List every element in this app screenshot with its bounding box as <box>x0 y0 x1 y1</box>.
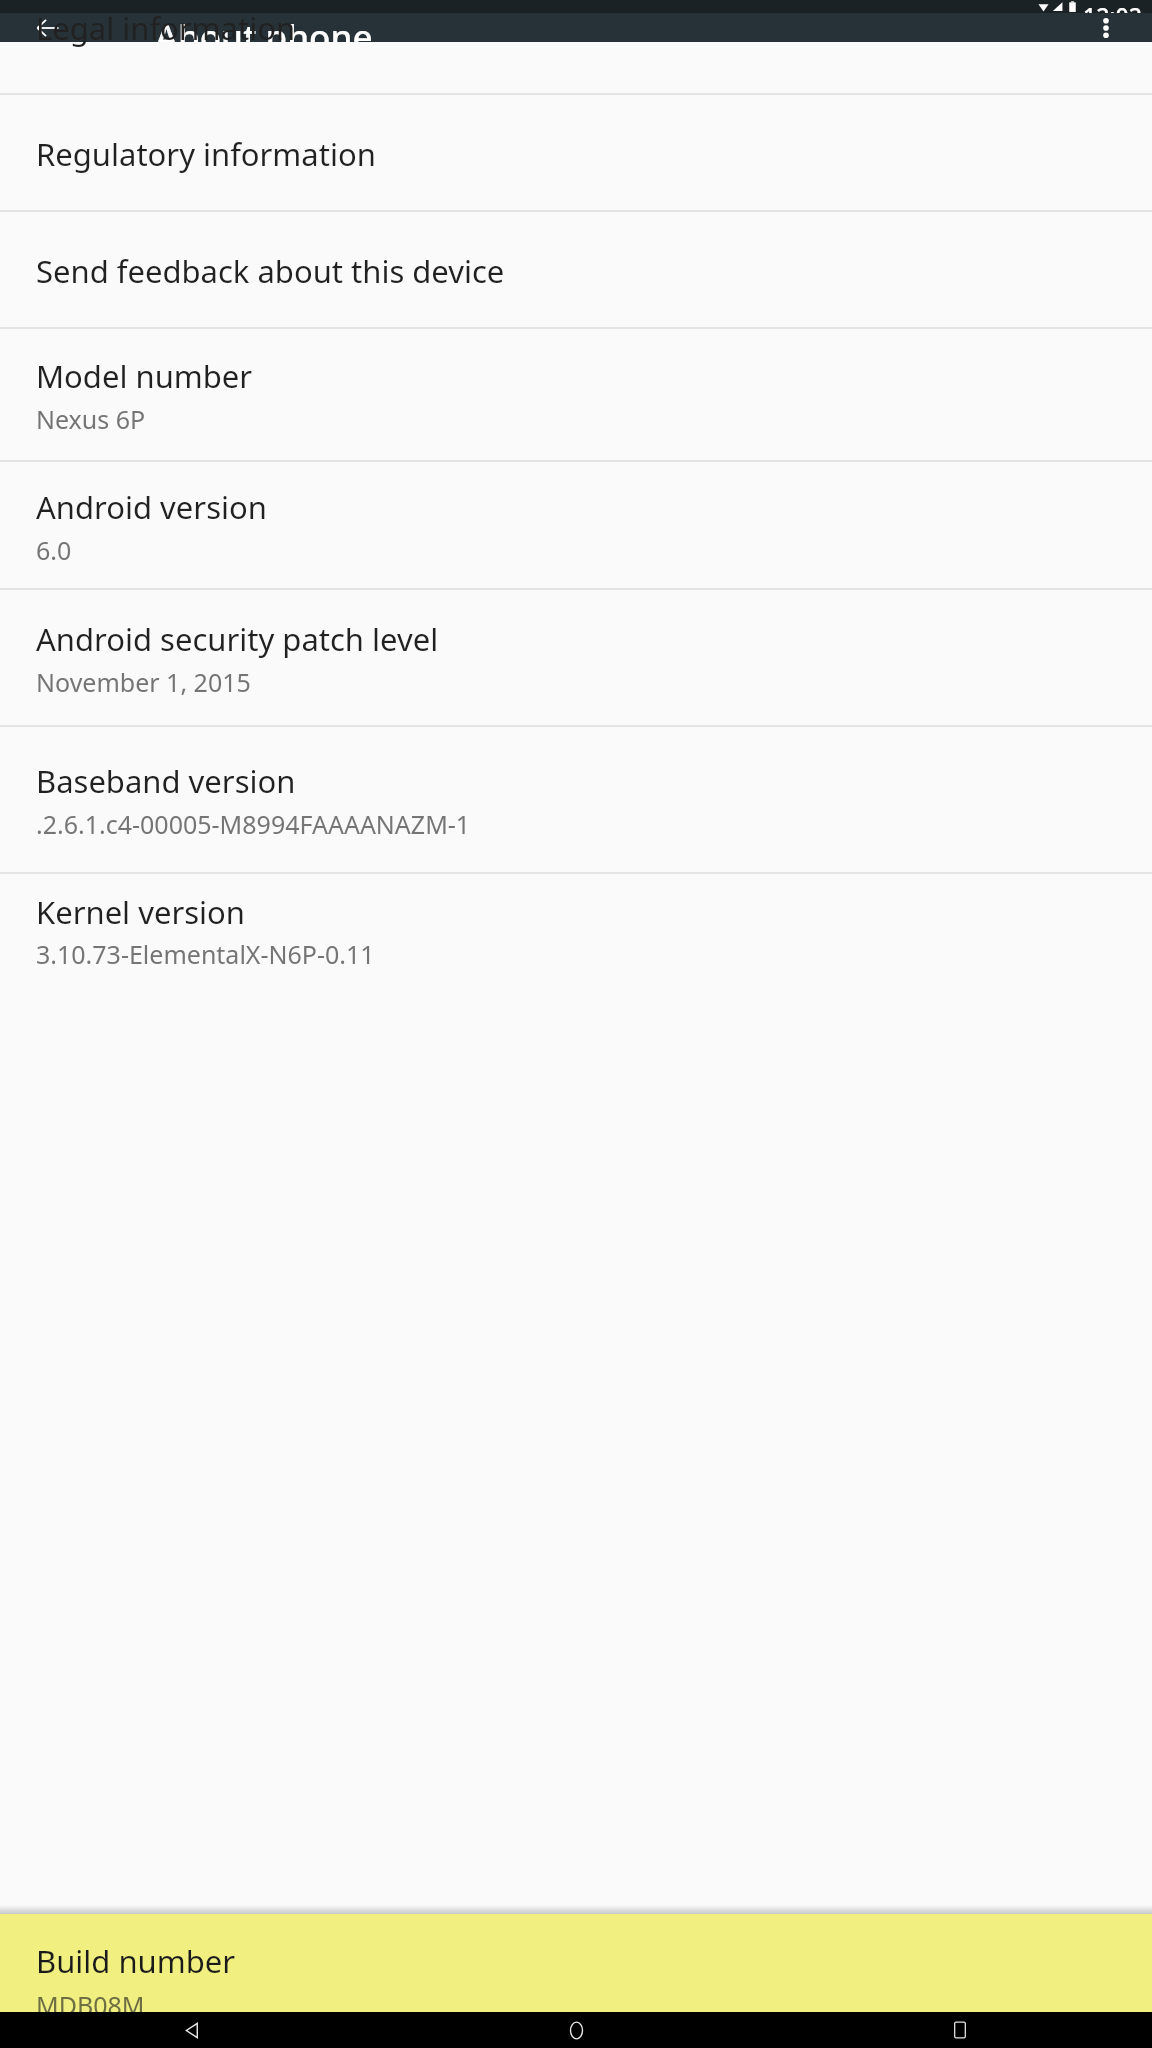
button[interactable]: Android version <box>0 462 1152 590</box>
button[interactable]: Kernel version <box>0 874 1152 977</box>
button[interactable]: Back <box>168 2012 216 2048</box>
staticText: Android security patch level <box>36 618 439 660</box>
staticText: 12:02 <box>1083 0 1142 13</box>
button[interactable]: Back <box>24 13 72 42</box>
staticText: Android version <box>36 486 267 528</box>
staticText: Kernel version <box>36 891 245 933</box>
staticText: Build number <box>36 1940 236 1982</box>
button[interactable]: Regulatory information <box>0 95 1152 212</box>
button[interactable]: Home <box>552 2012 600 2048</box>
staticText: November 1, 2015 <box>36 665 251 699</box>
button[interactable]: Baseband version <box>0 727 1152 874</box>
button[interactable]: Send feedback about this device <box>0 212 1152 329</box>
staticText: Send feedback about this device <box>36 250 505 292</box>
button[interactable]: Recents <box>936 2012 984 2048</box>
staticText: Regulatory information <box>36 133 376 175</box>
staticText: 6.0 <box>36 533 72 567</box>
button[interactable]: Model number <box>0 329 1152 462</box>
staticText: Baseband version <box>36 760 296 802</box>
staticText: .2.6.1.c4-00005-M8994FAAAANAZM-1 <box>36 807 471 841</box>
staticText: About phone <box>155 13 373 42</box>
staticText: MDB08M <box>36 1988 145 2012</box>
staticText: 3.10.73-ElementalX-N6P-0.11 <box>36 937 375 971</box>
button[interactable]: Legal information <box>0 42 1152 95</box>
button[interactable]: Android security patch level <box>0 590 1152 727</box>
button[interactable]: More options <box>1082 13 1130 42</box>
staticText: Model number <box>36 355 253 397</box>
staticText: Nexus 6P <box>36 402 146 436</box>
button[interactable]: Build number <box>0 1914 1152 2012</box>
staticText: Legal information <box>36 7 296 49</box>
